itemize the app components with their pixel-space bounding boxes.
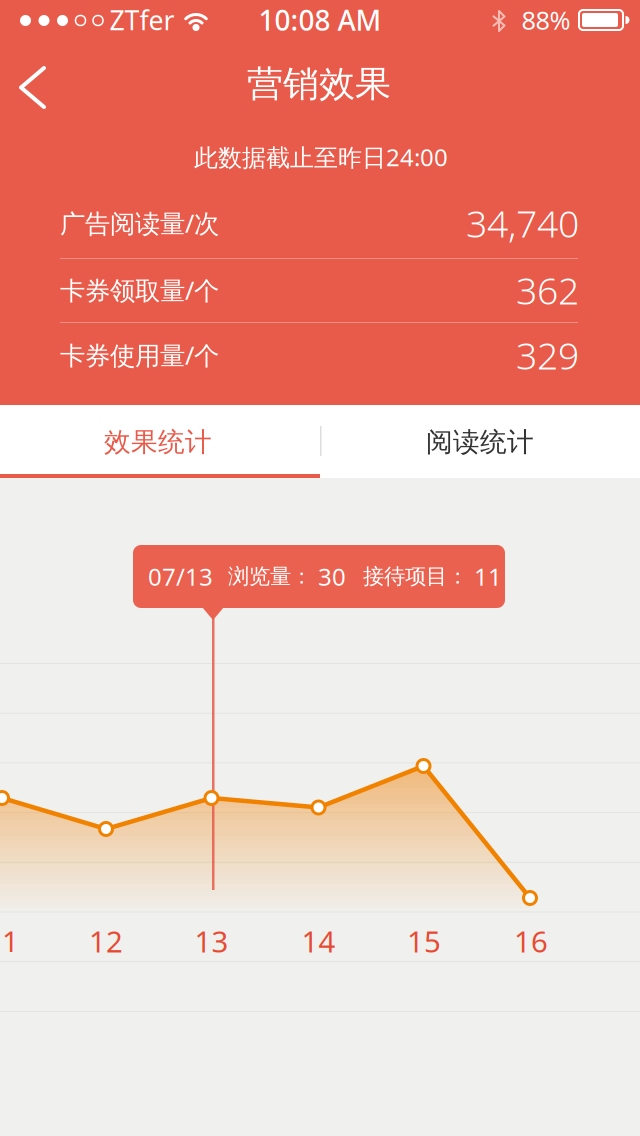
staticText: 11 [0, 921, 19, 960]
staticText: 34,740 [466, 198, 579, 248]
staticText: 阅读统计 [426, 426, 534, 458]
staticText: 营销效果 [247, 62, 391, 106]
staticText: 效果统计 [104, 426, 212, 458]
staticText: 卡券领取量/个 [60, 273, 219, 307]
staticText: 16 [514, 921, 548, 960]
staticText: 88% [521, 3, 570, 37]
staticText: 卡券使用量/个 [60, 338, 219, 372]
staticText: 浏览量： [228, 563, 318, 590]
staticText: 12 [89, 921, 123, 960]
staticText: 30 [318, 561, 346, 592]
staticText: 362 [516, 265, 579, 315]
staticText: 11 [474, 561, 502, 592]
staticText: ZTfer [109, 2, 174, 38]
staticText: 329 [516, 330, 579, 380]
staticText: 14 [301, 921, 335, 960]
staticText: 此数据截止至昨日24:00 [194, 141, 448, 173]
staticText: 07/13 [148, 561, 213, 592]
staticText: 广告阅读量/次 [60, 206, 219, 240]
staticText: 13 [194, 921, 228, 960]
staticText: 10:08 AM [258, 1, 381, 39]
staticText: 接待项目： [363, 563, 474, 590]
staticText: 15 [407, 921, 441, 960]
